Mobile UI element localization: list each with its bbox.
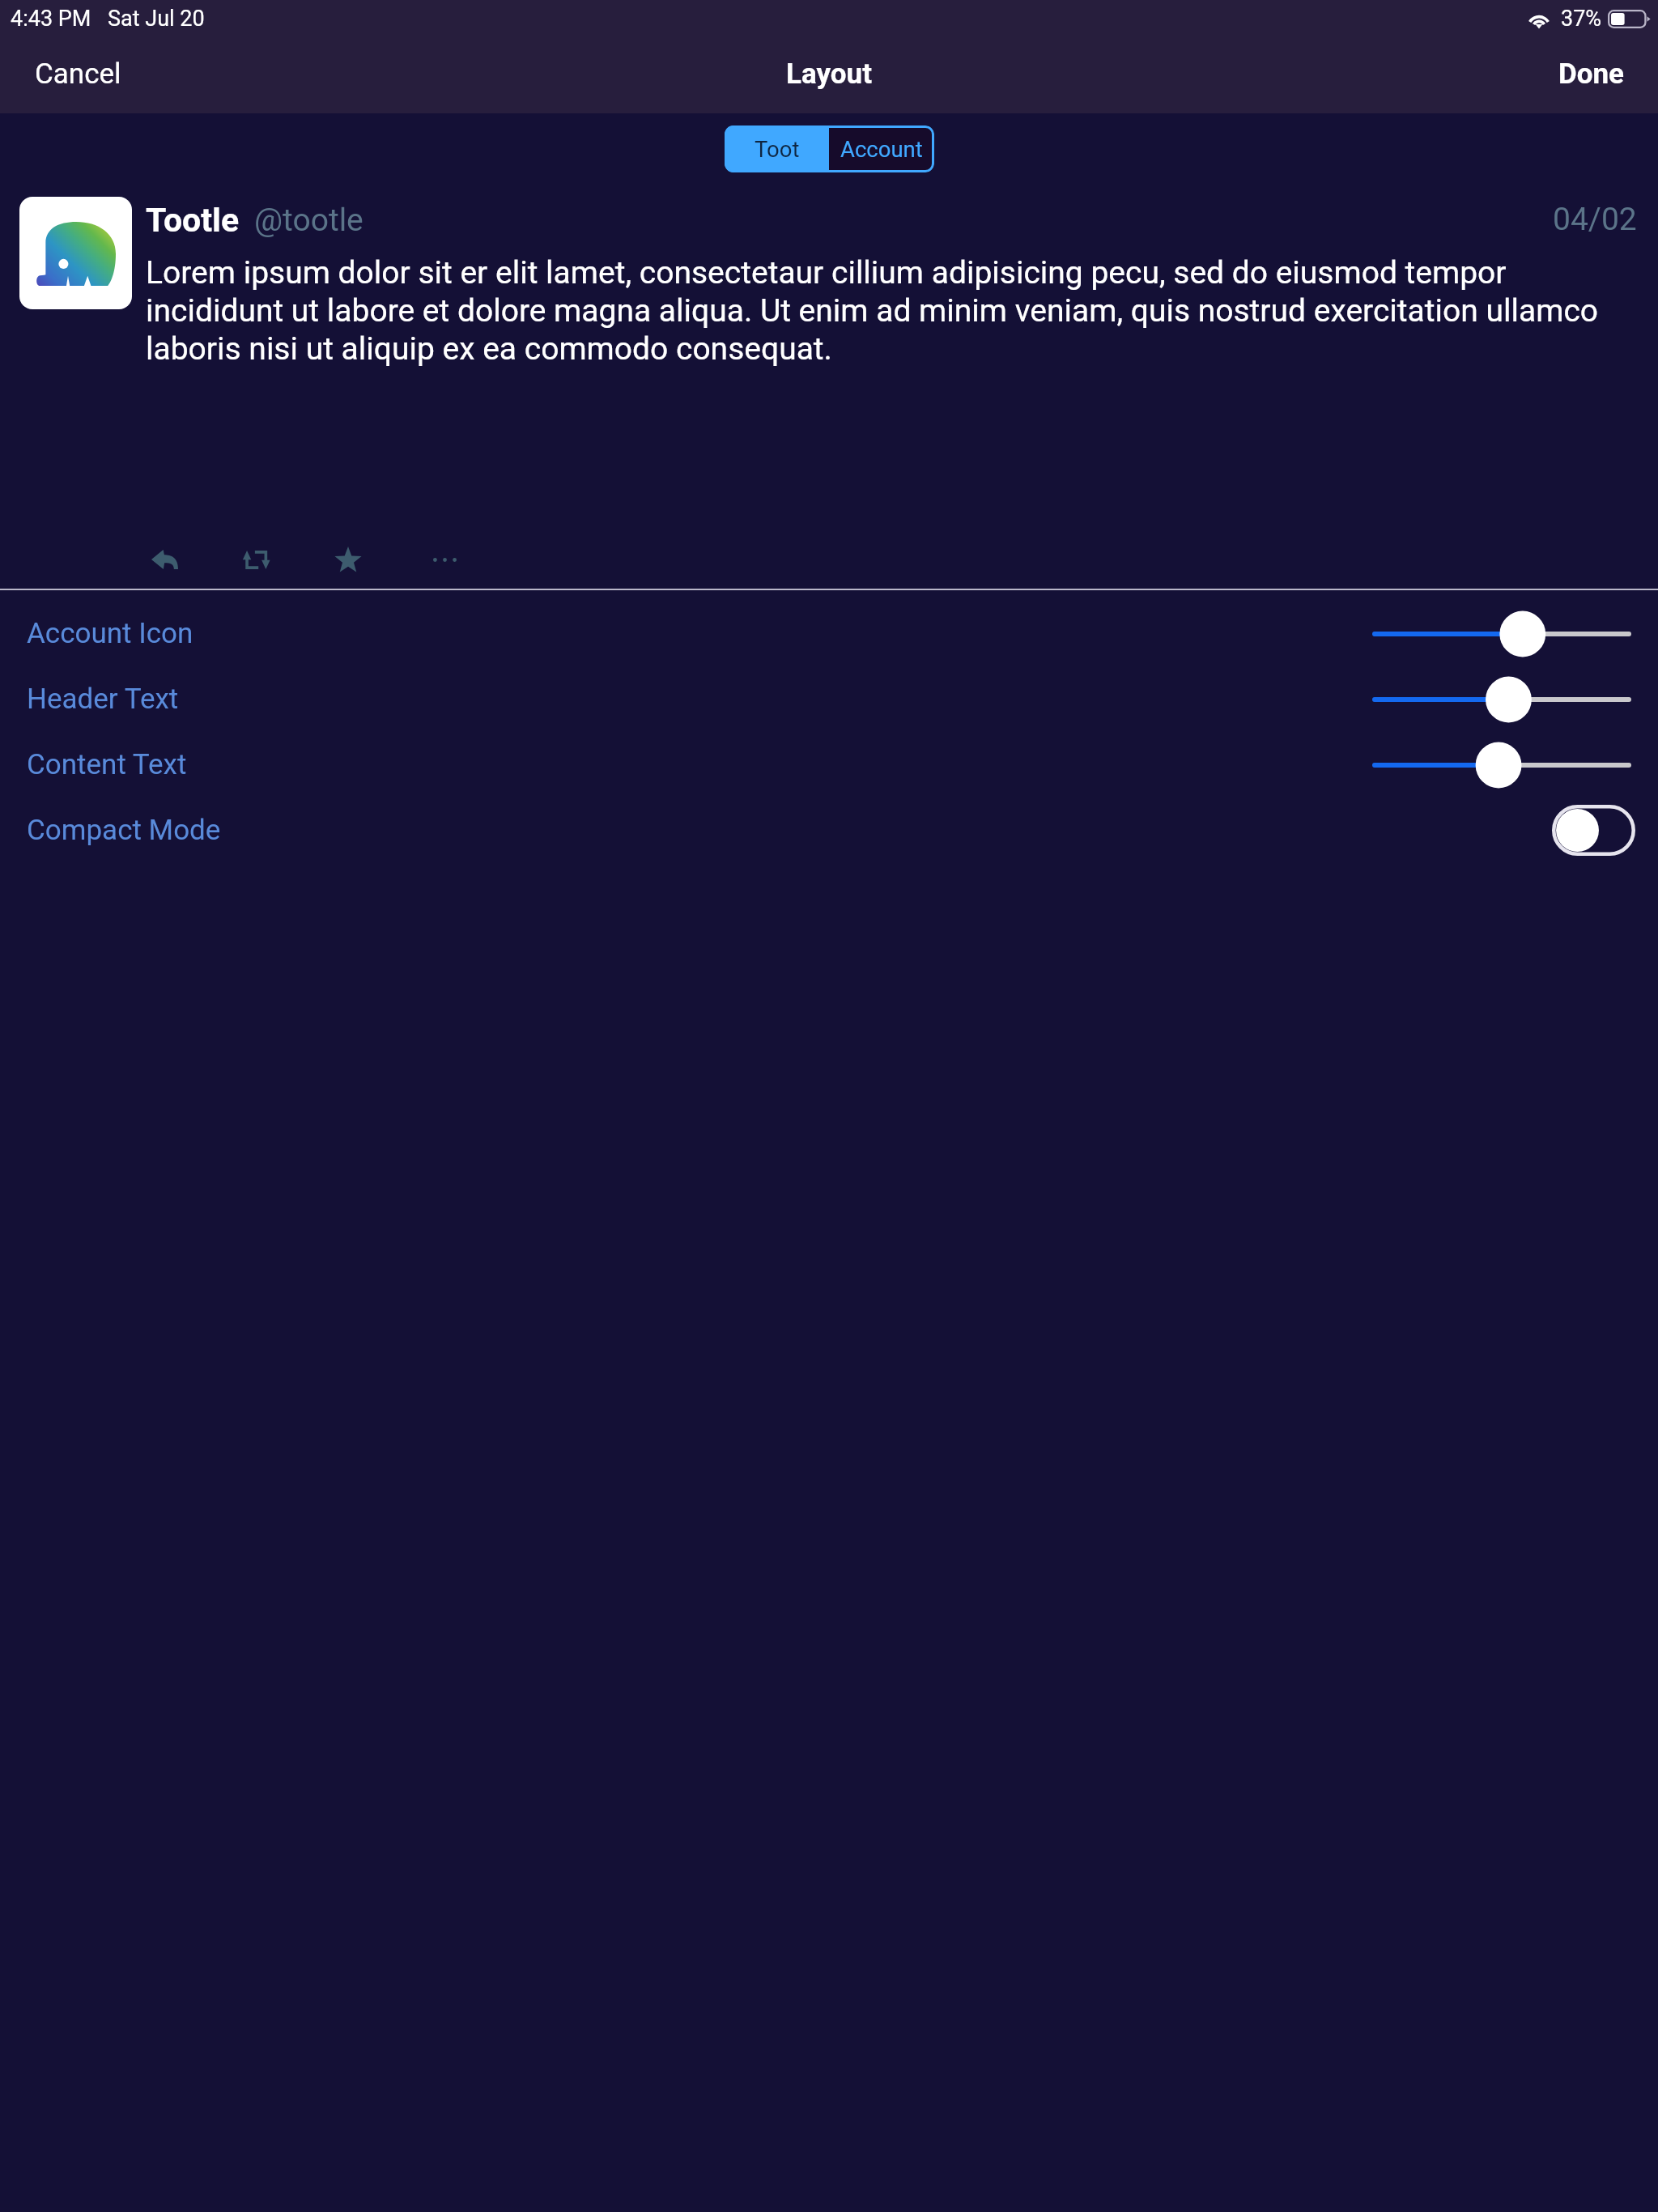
staticText: @tootle <box>254 202 363 239</box>
button[interactable]: Layout <box>767 46 891 102</box>
staticText: Cancel <box>35 57 121 91</box>
button[interactable]: Reply <box>133 528 196 591</box>
button[interactable]: Header Text <box>0 666 1658 732</box>
button[interactable]: Content Text <box>0 732 1658 798</box>
staticText: Content Text <box>27 748 187 781</box>
button[interactable]: Account Icon <box>0 601 1658 666</box>
staticText: Compact Mode <box>27 814 221 847</box>
button[interactable]: Avatar <box>19 197 132 309</box>
staticText: Account Icon <box>27 617 193 650</box>
staticText: 04/02 <box>1553 201 1637 238</box>
button[interactable]: Boost <box>223 528 287 591</box>
staticText: 4:43 PM <box>11 6 91 32</box>
button[interactable]: Cancel <box>16 46 140 102</box>
button[interactable]: Compact Mode <box>0 798 1658 863</box>
staticText: Tootle <box>146 201 240 240</box>
button[interactable]: Favourite <box>317 528 380 591</box>
staticText: Account <box>840 136 923 162</box>
staticText: 37% <box>1561 6 1602 32</box>
button[interactable]: More <box>413 528 476 591</box>
button[interactable]: Account <box>829 125 934 172</box>
staticText: Sat Jul 20 <box>108 6 205 32</box>
button[interactable]: Toot <box>725 125 829 172</box>
staticText: Lorem ipsum dolor sit er elit lamet, con… <box>146 254 1637 368</box>
staticText: Header Text <box>27 683 179 716</box>
staticText: Done <box>1558 57 1625 91</box>
staticText: Layout <box>786 57 872 91</box>
staticText: Toot <box>755 136 800 162</box>
button[interactable]: Done <box>1540 46 1643 102</box>
